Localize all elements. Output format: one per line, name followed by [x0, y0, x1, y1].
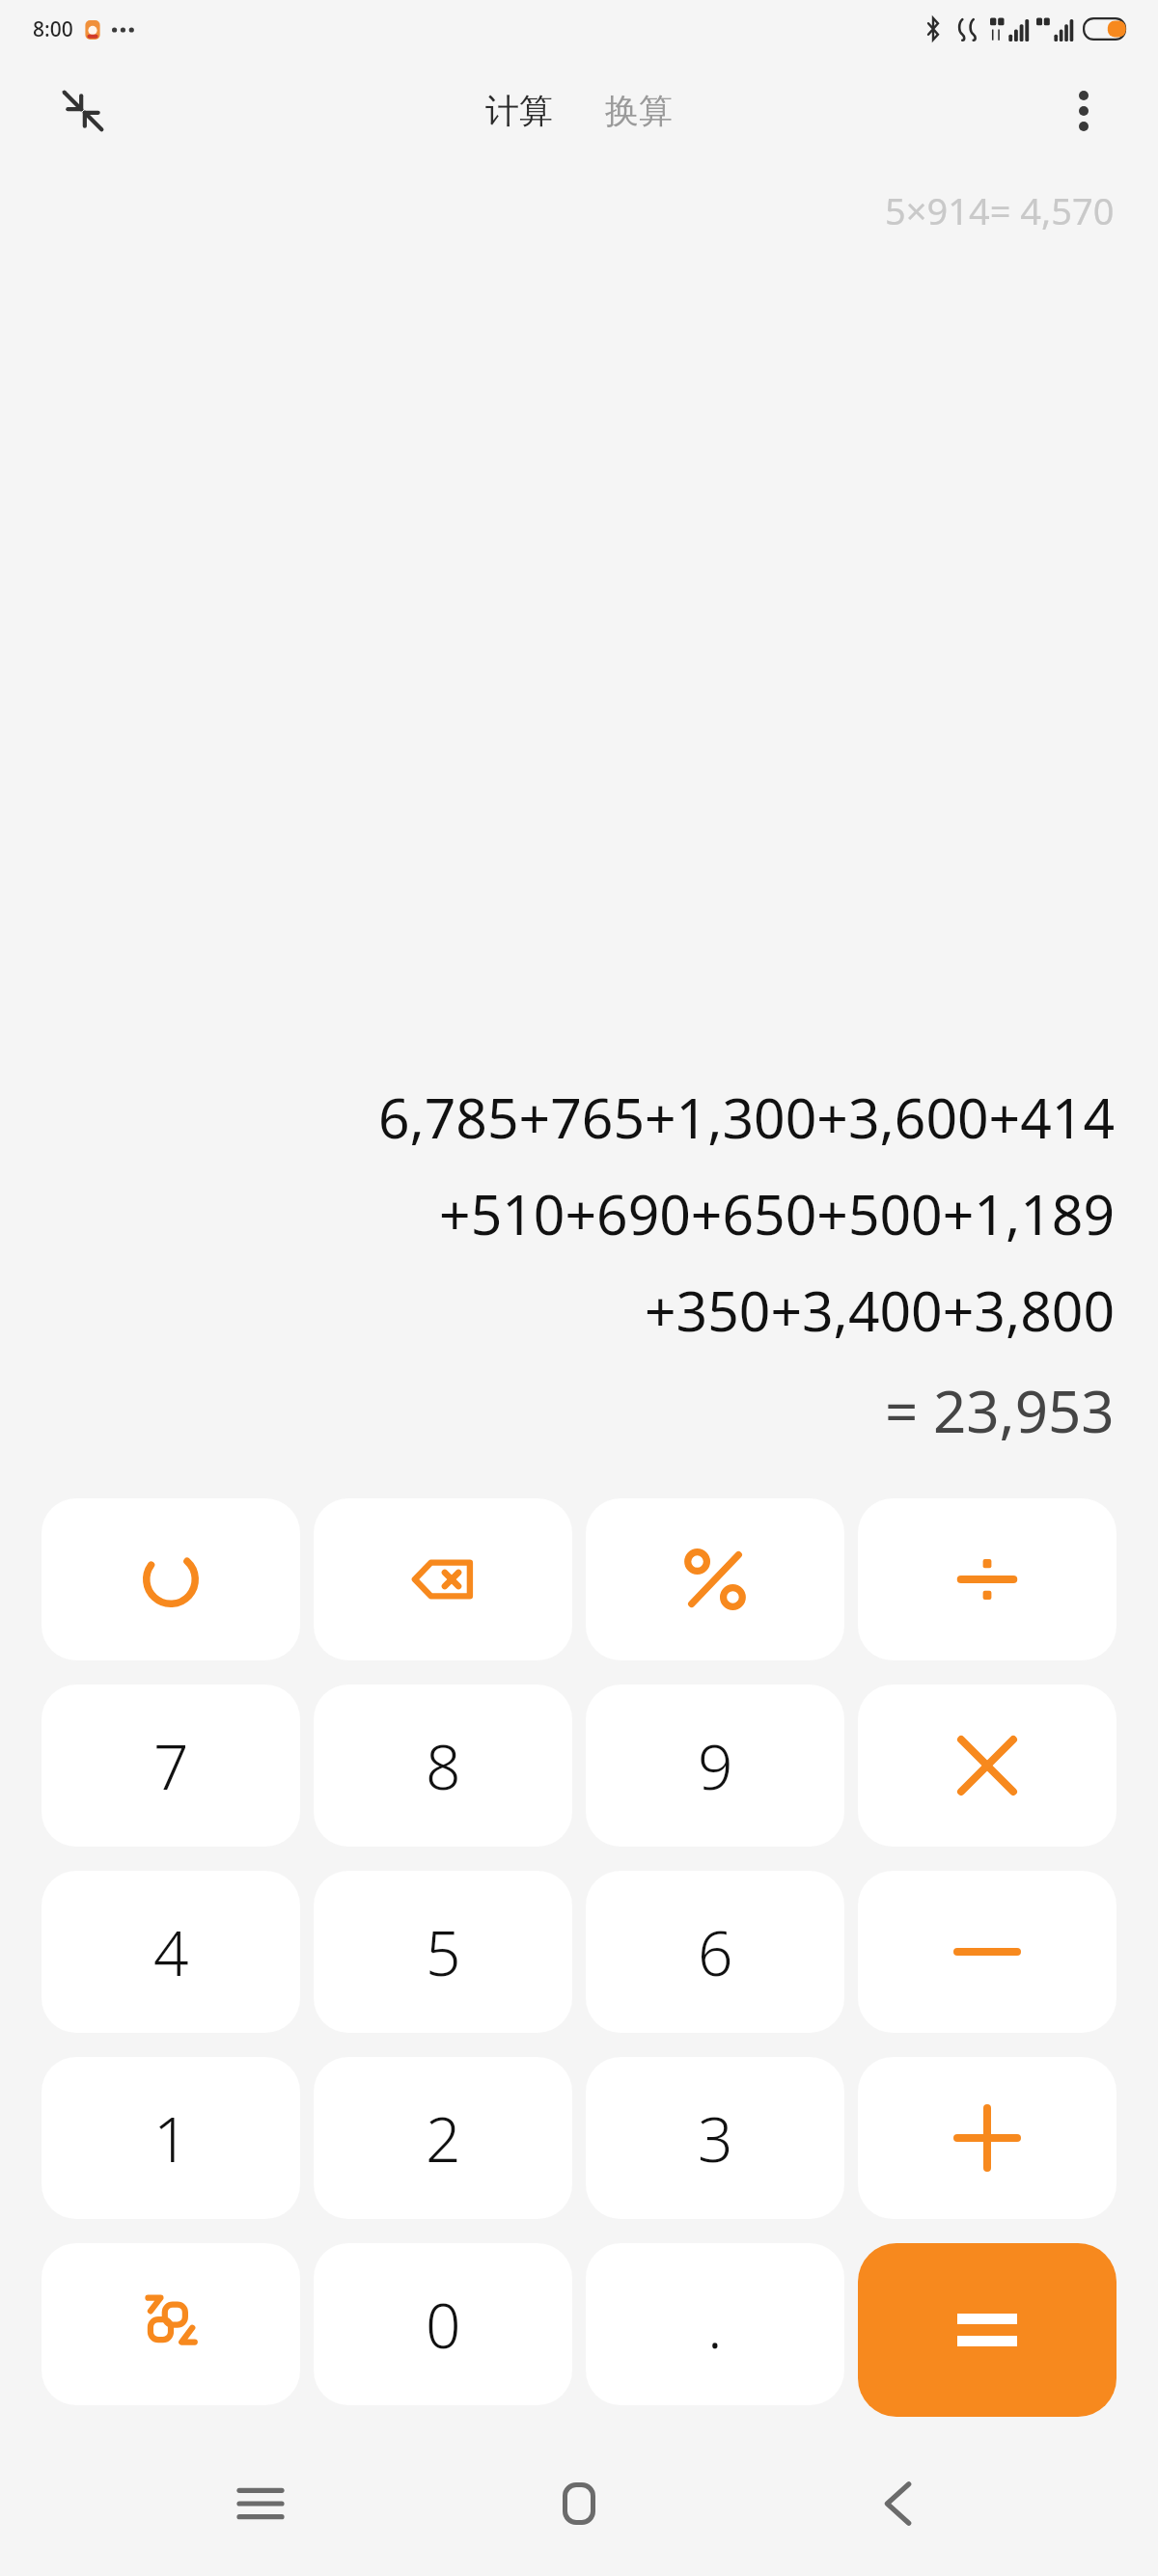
staticText: 2	[426, 2096, 461, 2180]
button[interactable]: 0	[314, 2243, 572, 2405]
staticText: 换算	[605, 90, 673, 132]
button[interactable]	[858, 1498, 1117, 1660]
staticText: 4	[153, 1910, 189, 1994]
button[interactable]: 5	[314, 1871, 572, 2033]
staticText: 5×914= 4,570	[885, 185, 1115, 235]
button[interactable]: 2	[314, 2057, 572, 2219]
staticText: +350+3,400+3,800	[644, 1273, 1115, 1348]
button[interactable]	[858, 1685, 1117, 1847]
button[interactable]: Recents	[203, 2460, 318, 2547]
staticText: = 23,953	[885, 1371, 1115, 1450]
staticText: +510+690+650+500+1,189	[439, 1176, 1115, 1251]
staticText: 计算	[485, 90, 553, 132]
staticText: 0	[426, 2283, 461, 2367]
button[interactable]	[586, 1498, 844, 1660]
button[interactable]: Backspace	[314, 1498, 572, 1660]
staticText: 3	[698, 2096, 733, 2180]
button[interactable]: 4	[41, 1871, 300, 2033]
button[interactable]: 计算	[472, 80, 566, 142]
button[interactable]: 7	[41, 1685, 300, 1847]
button[interactable]: Home	[521, 2460, 637, 2547]
button[interactable]: 6	[586, 1871, 844, 2033]
button[interactable]: 换算	[592, 80, 686, 142]
button[interactable]	[858, 1871, 1117, 2033]
button[interactable]: Equals	[858, 2243, 1117, 2417]
button[interactable]: Collapse	[48, 76, 118, 146]
button[interactable]: 8	[314, 1685, 572, 1847]
button[interactable]: Back	[840, 2460, 955, 2547]
staticText: 6,785+765+1,300+3,600+414	[377, 1080, 1115, 1155]
staticText: 8:00	[33, 15, 73, 43]
staticText: 7	[153, 1724, 189, 1808]
button[interactable]	[858, 2057, 1117, 2219]
staticText: .	[707, 2283, 723, 2367]
button[interactable]	[41, 1498, 300, 1660]
staticText: 8	[426, 1724, 461, 1808]
button[interactable]: 9	[586, 1685, 844, 1847]
staticText: 5	[426, 1910, 461, 1994]
button[interactable]: 1	[41, 2057, 300, 2219]
button[interactable]: More options	[1052, 79, 1116, 143]
button[interactable]: 3	[586, 2057, 844, 2219]
staticText: 6	[698, 1910, 733, 1994]
staticText: 9	[698, 1724, 733, 1808]
staticText: 1	[153, 2096, 189, 2180]
button[interactable]: Scientific functions	[41, 2243, 300, 2405]
button[interactable]: .	[586, 2243, 844, 2405]
